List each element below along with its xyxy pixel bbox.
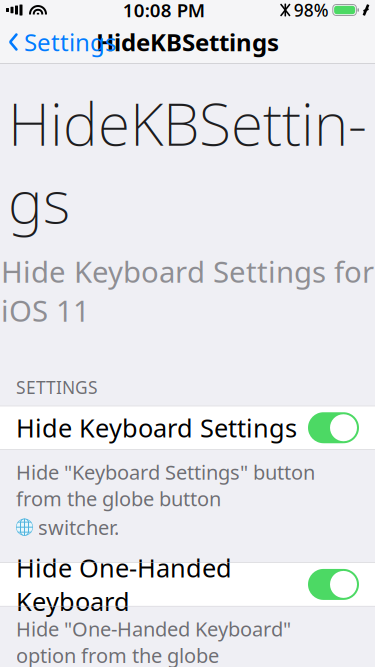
staticText: Hide "One-Handed Keyboard" option from t… bbox=[16, 615, 291, 667]
staticText: Hide Keyboard Settings bbox=[16, 411, 297, 444]
staticText: Hide One-Handed Keyboard bbox=[16, 551, 232, 618]
staticText: 98% bbox=[294, 0, 329, 21]
button[interactable]: Settings bbox=[0, 18, 126, 66]
staticText: HideKBSettings bbox=[96, 26, 279, 58]
staticText: 10:08 PM bbox=[123, 0, 205, 22]
staticText: switcher. bbox=[38, 514, 119, 540]
staticText: Hide Keyboard Settings for iOS 11 bbox=[1, 252, 374, 330]
staticText: HideKBSettings bbox=[8, 84, 367, 240]
button[interactable]: Hide One-Handed Keyboard bbox=[0, 562, 375, 606]
staticText: Settings bbox=[24, 26, 116, 58]
staticText: Hide "Keyboard Settings" button from the… bbox=[16, 459, 315, 512]
staticText: SETTINGS bbox=[16, 376, 98, 399]
button[interactable]: Hide Keyboard Settings bbox=[0, 406, 375, 450]
